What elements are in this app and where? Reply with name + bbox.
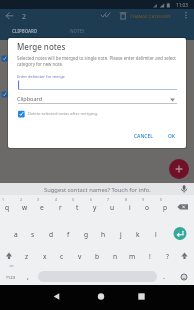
button[interactable]: ?: [159, 247, 175, 265]
button[interactable]: [116, 9, 130, 22]
staticText: CHANGE CATEGORY: [130, 13, 171, 19]
button[interactable]: [174, 196, 194, 217]
button[interactable]: e: [34, 198, 50, 216]
button[interactable]: Clipboard: [17, 93, 107, 103]
button[interactable]: r: [52, 198, 68, 216]
button[interactable]: [129, 289, 154, 304]
button[interactable]: u: [104, 198, 120, 216]
staticText: i: [129, 203, 131, 212]
button[interactable]: [171, 224, 190, 243]
button[interactable]: h: [95, 225, 111, 243]
staticText: Merge notes: [17, 41, 66, 52]
staticText: CANCEL: [134, 133, 153, 140]
staticText: OK: [168, 133, 176, 140]
button[interactable]: d: [43, 225, 59, 243]
button[interactable]: y: [87, 198, 103, 216]
button[interactable]: [16, 108, 156, 120]
button[interactable]: [179, 9, 192, 22]
staticText: 7: [107, 197, 110, 202]
button[interactable]: !: [142, 247, 158, 265]
button[interactable]: q: [0, 198, 15, 216]
staticText: 11:03: [176, 2, 188, 8]
staticText: r: [59, 203, 62, 212]
button[interactable]: [176, 267, 194, 285]
staticText: Selected notes will be merged to single …: [17, 55, 176, 61]
button[interactable]: CANCEL: [131, 131, 155, 142]
button[interactable]: i: [122, 198, 138, 216]
button[interactable]: OK: [164, 131, 180, 142]
button[interactable]: [3, 10, 18, 23]
button[interactable]: k: [130, 225, 146, 243]
button[interactable]: c: [54, 247, 70, 265]
button[interactable]: [178, 183, 192, 195]
staticText: 2: [22, 12, 27, 22]
button[interactable]: o: [139, 198, 155, 216]
button[interactable]: ,: [22, 270, 34, 284]
staticText: ?123: [6, 274, 16, 280]
staticText: s: [31, 230, 35, 239]
button[interactable]: v: [72, 247, 88, 265]
staticText: v: [78, 252, 82, 261]
staticText: k: [136, 230, 140, 239]
button[interactable]: CHANGE CATEGORY: [129, 11, 171, 21]
staticText: d: [49, 230, 54, 239]
staticText: CLIPBOARD: [12, 28, 38, 34]
staticText: q: [5, 203, 10, 212]
button[interactable]: m: [124, 247, 140, 265]
button[interactable]: [169, 159, 189, 179]
button[interactable]: [176, 245, 194, 266]
staticText: 2: [20, 197, 23, 202]
staticText: j: [120, 230, 122, 239]
staticText: !: [149, 252, 151, 261]
button[interactable]: ?123: [2, 271, 19, 283]
staticText: z: [25, 252, 29, 261]
button[interactable]: b: [89, 247, 105, 265]
staticText: ,: [27, 272, 29, 282]
staticText: 6: [90, 197, 93, 202]
staticText: Clipboard: [17, 95, 43, 102]
button[interactable]: n: [107, 247, 123, 265]
button[interactable]: p: [157, 198, 173, 216]
button[interactable]: [44, 289, 69, 304]
staticText: 9: [142, 197, 145, 202]
button[interactable]: Suggest contact names? Touch for info.: [30, 184, 164, 195]
staticText: f: [67, 230, 70, 239]
button[interactable]: w: [17, 198, 33, 216]
button[interactable]: NOTES: [64, 26, 90, 36]
button[interactable]: [0, 245, 18, 266]
staticText: 8: [125, 197, 128, 202]
staticText: u: [110, 203, 115, 212]
button[interactable]: [88, 289, 113, 304]
button[interactable]: z: [19, 247, 35, 265]
button[interactable]: CLIPBOARD: [10, 26, 40, 36]
button[interactable]: s: [25, 225, 41, 243]
staticText: a: [14, 230, 18, 239]
staticText: w: [22, 203, 28, 212]
button[interactable]: j: [113, 225, 129, 243]
staticText: x: [43, 252, 47, 261]
staticText: e: [40, 203, 44, 212]
staticText: b: [95, 252, 100, 261]
button[interactable]: a: [8, 225, 24, 243]
button[interactable]: .: [158, 270, 170, 284]
button[interactable]: l: [148, 225, 164, 243]
staticText: g: [84, 230, 89, 239]
staticText: NOTES: [70, 28, 85, 34]
button[interactable]: x: [37, 247, 53, 265]
staticText: n: [113, 252, 118, 261]
staticText: ?: [166, 252, 169, 261]
button[interactable]: [98, 9, 113, 22]
button[interactable]: [17, 79, 178, 91]
staticText: l: [155, 230, 157, 239]
staticText: c: [60, 252, 64, 261]
staticText: 4: [55, 197, 58, 202]
button[interactable]: g: [78, 225, 94, 243]
button[interactable]: f: [60, 225, 76, 243]
staticText: o: [145, 203, 149, 212]
staticText: m: [129, 252, 136, 261]
button[interactable]: t: [69, 198, 85, 216]
staticText: .: [163, 272, 165, 282]
staticText: 0: [160, 197, 163, 202]
staticText: 1: [2, 197, 5, 202]
